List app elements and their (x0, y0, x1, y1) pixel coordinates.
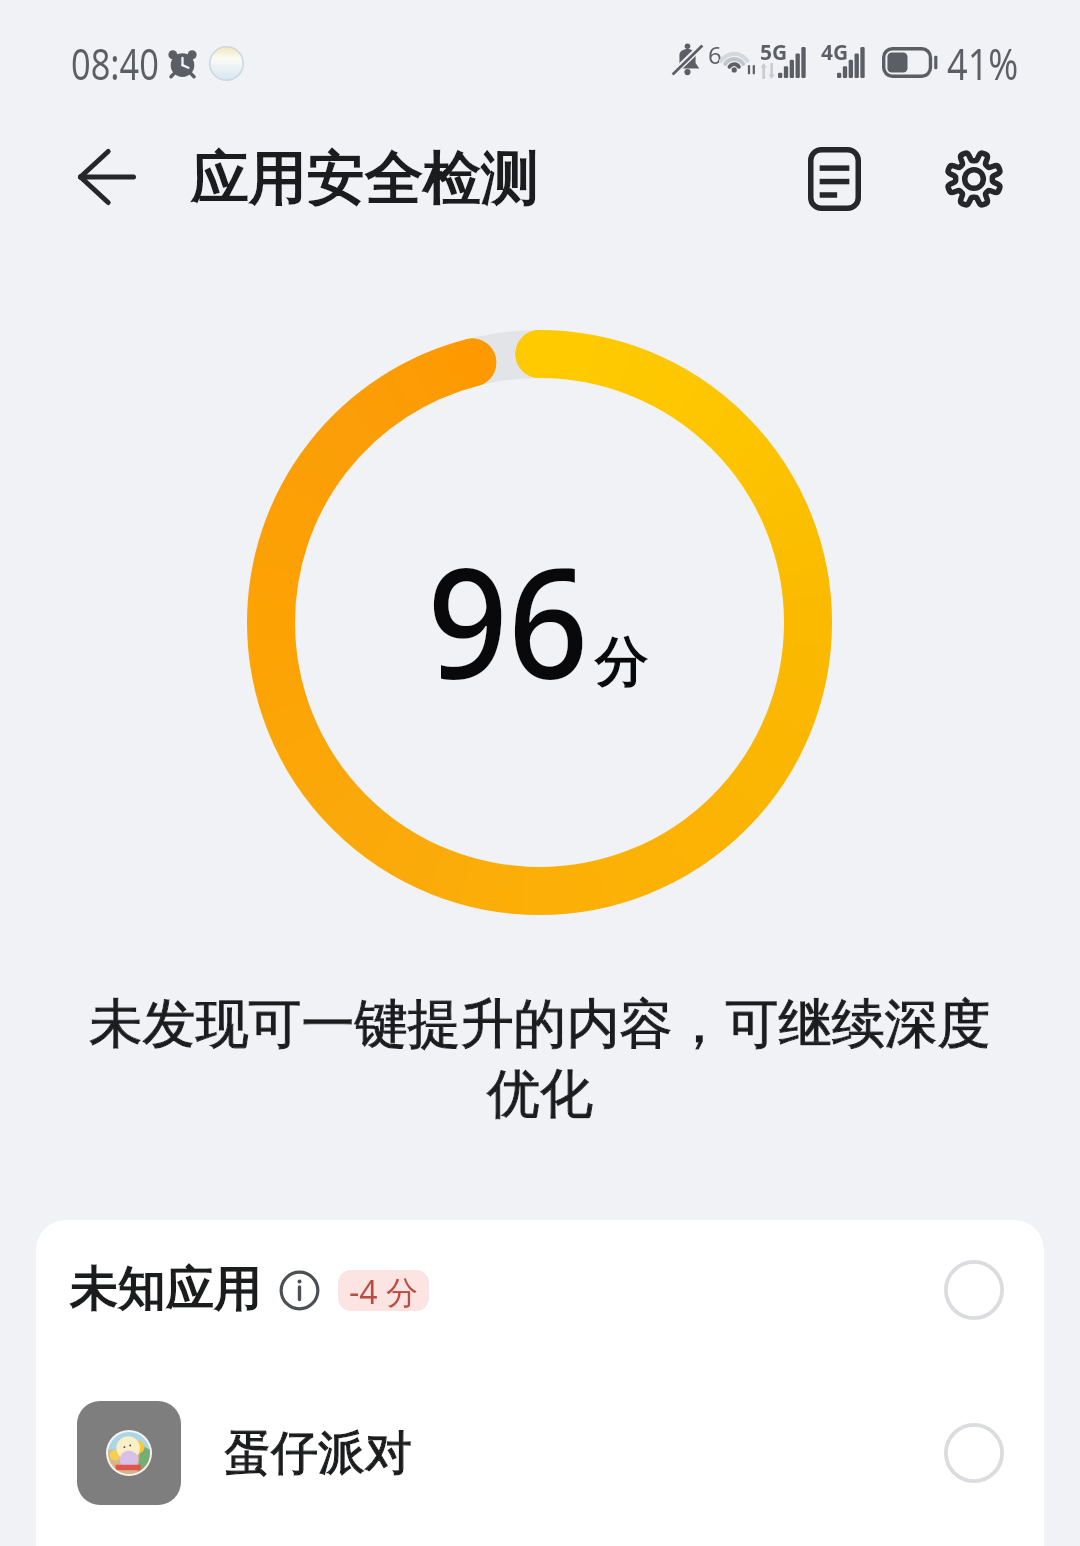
button[interactable]: Settings (926, 131, 1022, 227)
staticText: 应用安全检测 (191, 142, 539, 215)
staticText: 未知应用 (70, 1259, 262, 1319)
staticText: 未发现可一键提升的内容，可继续深度优化 (86, 991, 994, 1128)
button[interactable]: Report (786, 131, 882, 227)
staticText: 未知应用 (70, 1259, 262, 1319)
staticText: 蛋仔派对 (224, 1424, 412, 1483)
button[interactable]: Back (60, 130, 154, 224)
button[interactable]: 未知应用 (36, 1220, 1044, 1360)
staticText: 分 (595, 628, 649, 696)
button[interactable]: 蛋仔派对 (36, 1360, 1044, 1546)
staticText: 6 (708, 38, 722, 71)
staticText: 41% (947, 34, 1018, 93)
staticText: 分 (595, 628, 649, 696)
staticText: 应用安全检测 (191, 142, 539, 215)
staticText: 蛋仔派对 (224, 1424, 412, 1483)
staticText: 08:40 (71, 34, 159, 93)
staticText: -4 分 (349, 1270, 418, 1311)
staticText: 96 (427, 516, 588, 723)
staticText: 4G (821, 38, 849, 67)
staticText: 未发现可一键提升的内容，可继续深度优化 (86, 991, 994, 1128)
staticText: 5G (760, 38, 788, 67)
